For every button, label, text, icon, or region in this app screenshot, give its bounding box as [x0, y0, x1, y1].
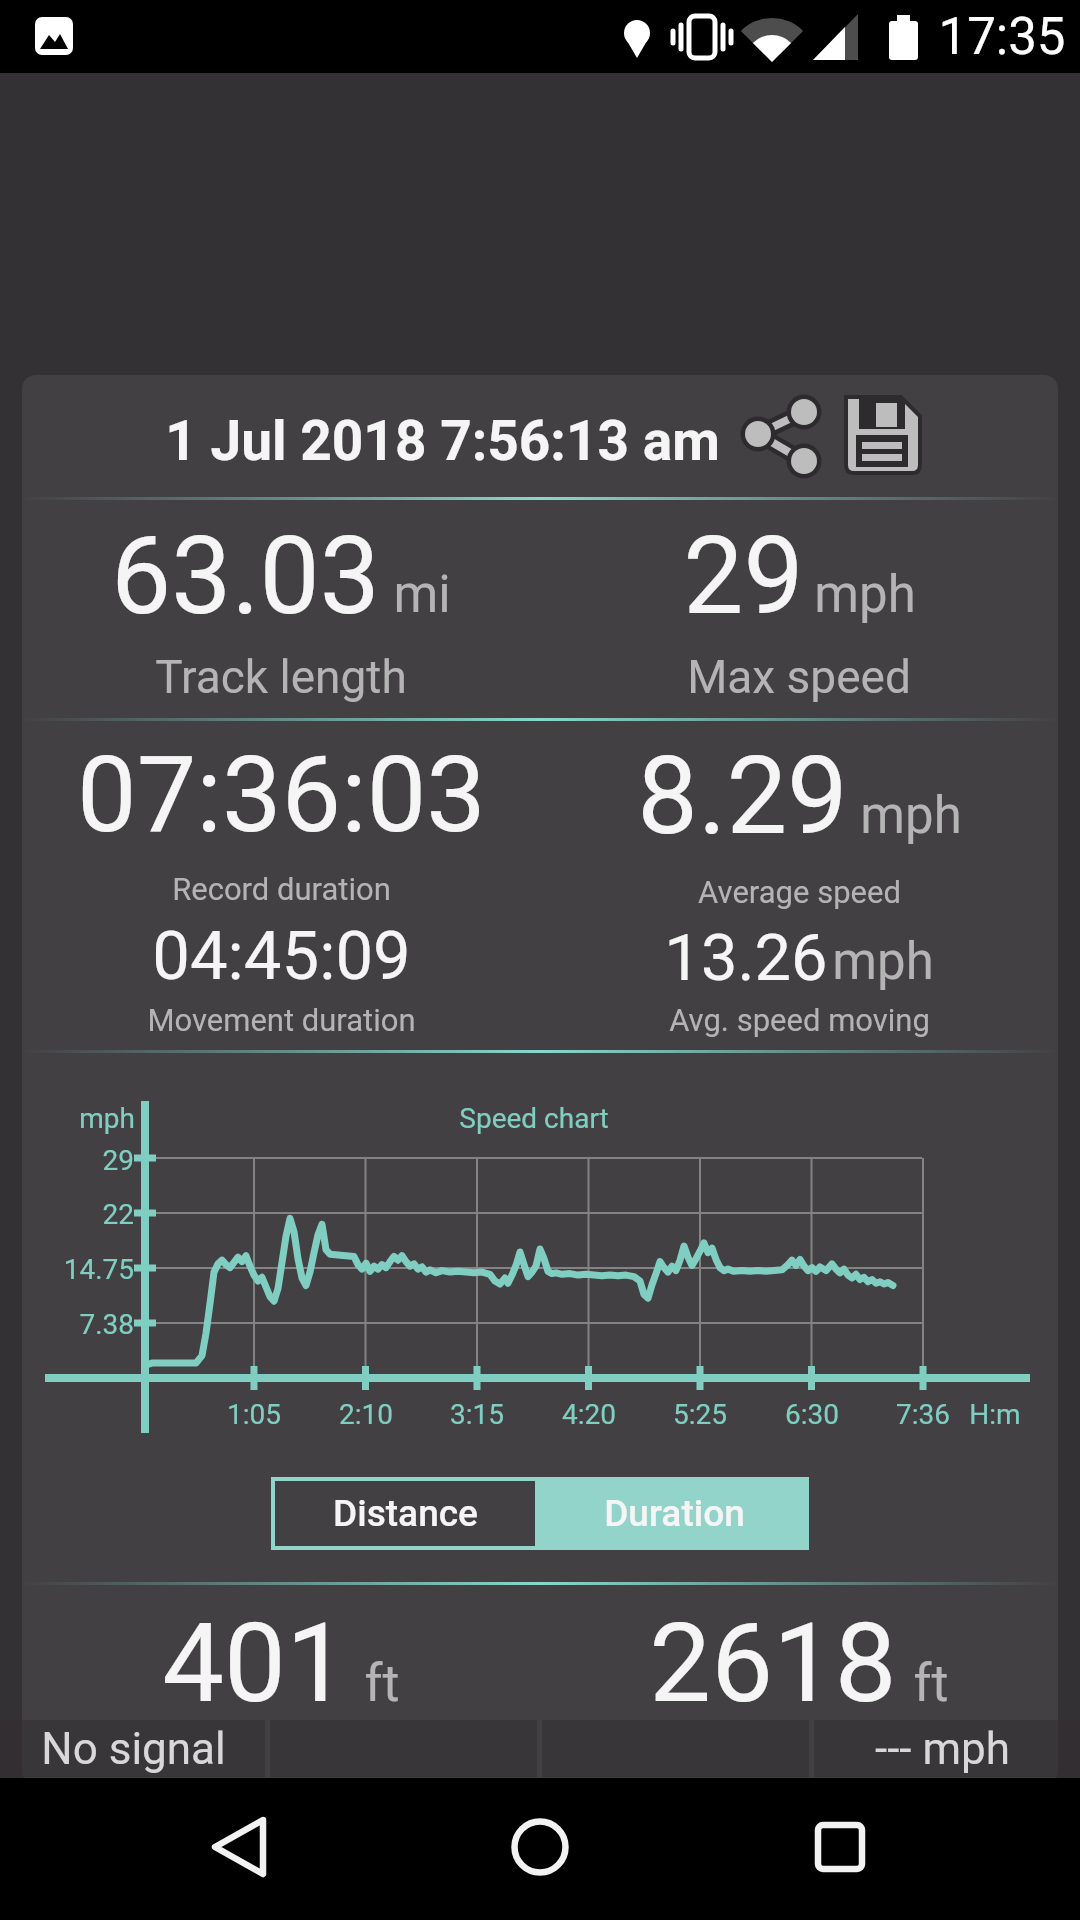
- staticText: 22: [102, 1198, 134, 1231]
- staticText: Average speed: [698, 874, 901, 910]
- button[interactable]: [823, 395, 933, 480]
- staticText: mph: [860, 786, 962, 846]
- staticText: Distance: [333, 1492, 478, 1535]
- button[interactable]: Duration: [539, 1477, 809, 1550]
- staticText: Track length: [155, 650, 407, 704]
- button[interactable]: [790, 1797, 890, 1897]
- staticText: 7.38: [79, 1308, 134, 1341]
- staticText: 63.03: [111, 514, 380, 639]
- staticText: 8.29: [637, 733, 848, 860]
- staticText: 07:36:03: [77, 733, 486, 857]
- staticText: ft: [913, 1653, 949, 1714]
- staticText: 7:36: [896, 1398, 950, 1431]
- staticText: Movement duration: [147, 1002, 416, 1038]
- staticText: H:m: [969, 1398, 1021, 1431]
- staticText: 5:25: [673, 1398, 727, 1431]
- staticText: Max speed: [687, 650, 911, 704]
- staticText: mph: [814, 565, 916, 625]
- button[interactable]: Distance: [271, 1477, 539, 1550]
- staticText: 1:05: [227, 1398, 281, 1431]
- staticText: No signal: [41, 1723, 226, 1775]
- staticText: Speed chart: [459, 1102, 609, 1135]
- staticText: 6:30: [785, 1398, 839, 1431]
- staticText: mi: [393, 565, 451, 625]
- staticText: --- mph: [875, 1723, 1010, 1775]
- staticText: 4:20: [562, 1398, 616, 1431]
- button[interactable]: [718, 395, 818, 480]
- staticText: Avg. speed moving: [669, 1002, 930, 1038]
- staticText: 04:45:09: [152, 917, 411, 996]
- staticText: 401: [162, 1599, 348, 1728]
- staticText: 2:10: [339, 1398, 393, 1431]
- button[interactable]: No signal: [0, 1720, 265, 1777]
- staticText: 1 Jul 2018 7:56:13 am: [165, 409, 720, 473]
- staticText: mph: [79, 1102, 135, 1135]
- staticText: mph: [832, 932, 934, 992]
- staticText: 29: [102, 1144, 134, 1177]
- staticText: 17:35: [938, 7, 1066, 67]
- button[interactable]: [490, 1797, 590, 1897]
- staticText: Duration: [604, 1492, 745, 1535]
- staticText: 2618: [649, 1599, 897, 1728]
- staticText: 3:15: [450, 1398, 504, 1431]
- staticText: Record duration: [172, 871, 391, 907]
- button[interactable]: --- mph: [814, 1720, 1080, 1777]
- button[interactable]: [190, 1797, 290, 1897]
- staticText: 29: [683, 514, 804, 639]
- staticText: 14.75: [63, 1253, 134, 1286]
- staticText: ft: [364, 1653, 400, 1714]
- staticText: 13.26: [664, 920, 828, 996]
